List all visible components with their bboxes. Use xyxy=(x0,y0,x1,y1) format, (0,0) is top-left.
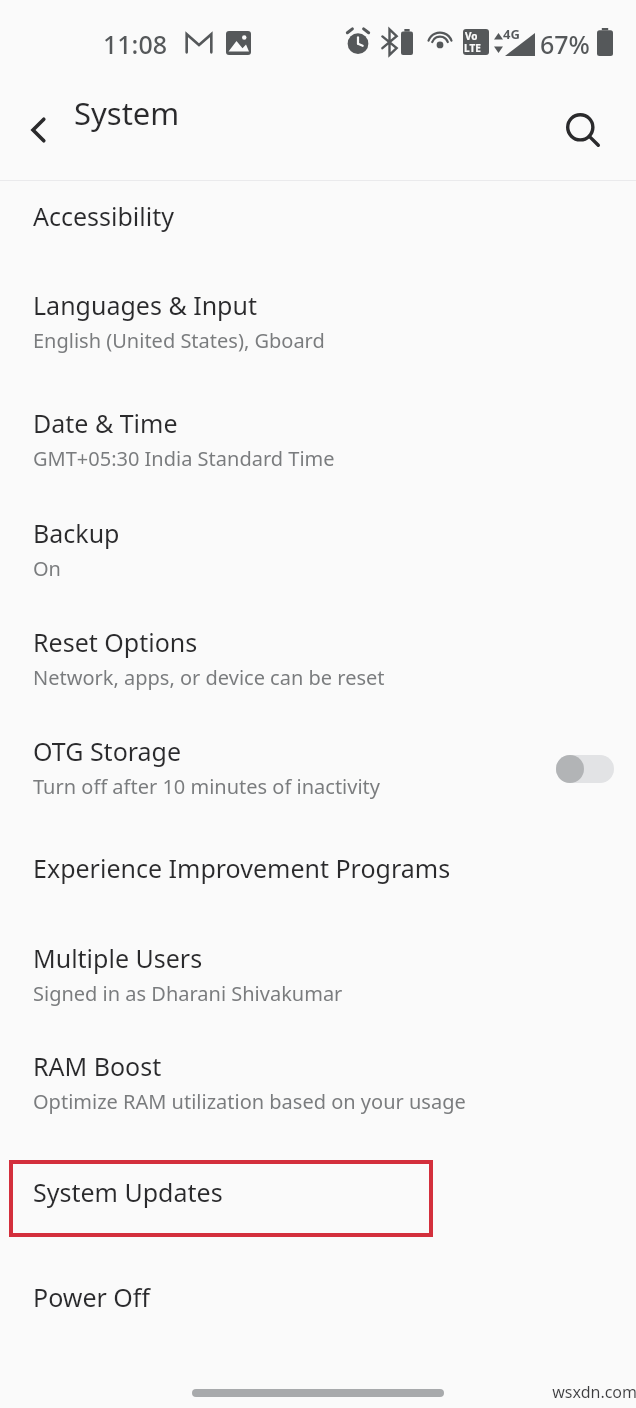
staticText: Multiple Users xyxy=(33,941,203,975)
button[interactable]: RAM Boost xyxy=(0,1036,636,1128)
staticText: Power Off xyxy=(33,1280,151,1314)
staticText: LTE xyxy=(464,41,481,55)
staticText: 67% xyxy=(540,27,590,61)
staticText: Signed in as Dharani Shivakumar xyxy=(33,980,343,1007)
staticText: Reset Options xyxy=(33,625,198,659)
staticText: On xyxy=(33,555,61,582)
button[interactable]: Accessibility xyxy=(0,186,636,246)
button[interactable]: System Updates xyxy=(0,1162,636,1222)
staticText: English (United States), Gboard xyxy=(33,327,325,354)
button[interactable]: Languages & Input xyxy=(0,275,636,367)
staticText: Backup xyxy=(33,516,120,550)
staticText: 11:08 xyxy=(103,27,168,61)
button[interactable]: Reset Options xyxy=(0,612,636,704)
staticText: Optimize RAM utilization based on your u… xyxy=(33,1088,466,1115)
button[interactable]: Back xyxy=(8,80,70,180)
staticText: Languages & Input xyxy=(33,288,257,322)
button[interactable]: Power Off xyxy=(0,1267,636,1327)
staticText: Vo xyxy=(465,29,478,43)
staticText: Accessibility xyxy=(33,199,174,233)
staticText: RAM Boost xyxy=(33,1049,162,1083)
staticText: Experience Improvement Programs xyxy=(33,851,451,885)
button[interactable]: Date & Time xyxy=(0,393,636,485)
staticText: Turn off after 10 minutes of inactivity xyxy=(33,773,380,800)
staticText: System Updates xyxy=(33,1175,223,1209)
staticText: OTG Storage xyxy=(33,734,182,768)
button[interactable]: OTG Storage xyxy=(0,721,636,813)
staticText: System xyxy=(74,92,180,134)
button[interactable]: Backup xyxy=(0,503,636,595)
button[interactable]: Search xyxy=(550,80,616,180)
staticText: 4G xyxy=(503,25,520,43)
staticText: GMT+05:30 India Standard Time xyxy=(33,445,335,472)
staticText: wsxdn.com xyxy=(552,1381,636,1403)
button[interactable]: Multiple Users xyxy=(0,928,636,1020)
button[interactable]: Experience Improvement Programs xyxy=(0,838,636,898)
staticText: Network, apps, or device can be reset xyxy=(33,664,385,691)
staticText: Date & Time xyxy=(33,406,178,440)
